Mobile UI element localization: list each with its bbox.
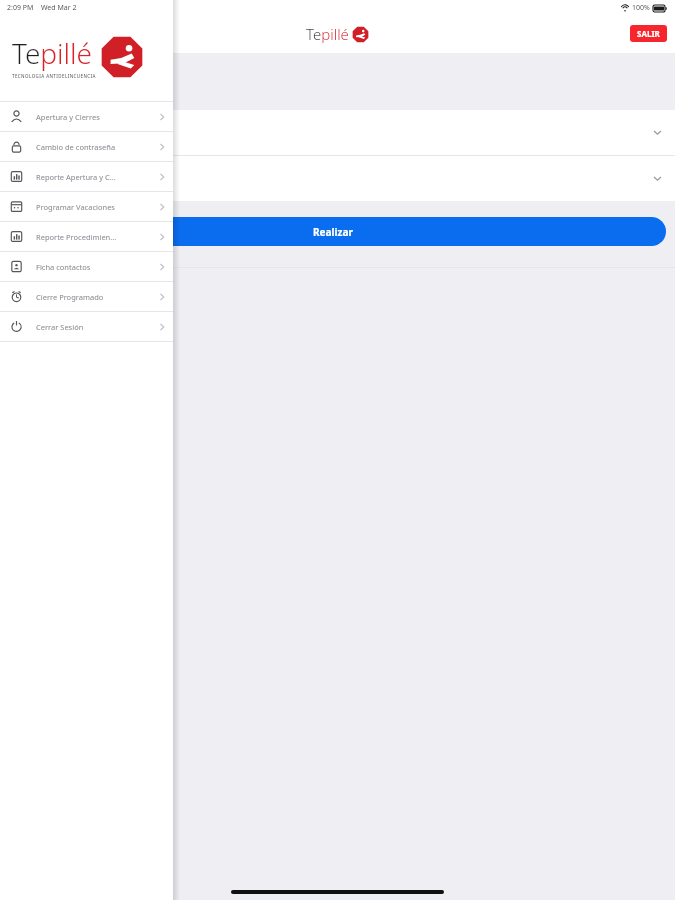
- button[interactable]: Open dropdown: [0, 156, 675, 201]
- staticText: 2:09 PM: [7, 3, 34, 13]
- staticText: Cierre Programado: [36, 292, 104, 302]
- staticText: Cambio de contraseña: [36, 142, 116, 152]
- button[interactable]: Cerrar Sesión: [0, 312, 173, 342]
- button[interactable]: Cierre Programado: [0, 282, 173, 312]
- staticText: Reporte Apertura y C...: [36, 172, 116, 182]
- staticText: Realizar: [313, 225, 353, 239]
- staticText: Ficha contactos: [36, 262, 91, 272]
- button[interactable]: Reporte Procedimien...: [0, 222, 173, 252]
- staticText: SALIR: [637, 28, 660, 39]
- button[interactable]: Cambio de contraseña: [0, 132, 173, 162]
- other: Open dropdown: [654, 129, 661, 136]
- staticText: Apertura y Cierres: [36, 112, 100, 122]
- staticText: Cerrar Sesión: [36, 322, 84, 332]
- staticText: Tepillé: [12, 34, 93, 72]
- button[interactable]: Open dropdown: [0, 110, 675, 155]
- staticText: Programar Vacaciones: [36, 202, 115, 212]
- button[interactable]: Realizar: [0, 217, 666, 246]
- button[interactable]: Reporte Apertura y C...: [0, 162, 173, 192]
- button[interactable]: Programar Vacaciones: [0, 192, 173, 222]
- staticText: Wed Mar 2: [41, 3, 77, 13]
- button[interactable]: Apertura y Cierres: [0, 102, 173, 132]
- other: Tepillé logo: [100, 35, 144, 79]
- staticText: TECNOLOGIA ANTIDELINCUENCIA: [12, 73, 96, 79]
- staticText: Tepillé: [306, 24, 349, 44]
- other: Tepillé logo: [352, 26, 369, 43]
- other: Open dropdown: [654, 175, 661, 182]
- staticText: 100%: [632, 3, 650, 13]
- button[interactable]: SALIR: [630, 25, 667, 42]
- button[interactable]: Ficha contactos: [0, 252, 173, 282]
- staticText: Reporte Procedimien...: [36, 232, 117, 242]
